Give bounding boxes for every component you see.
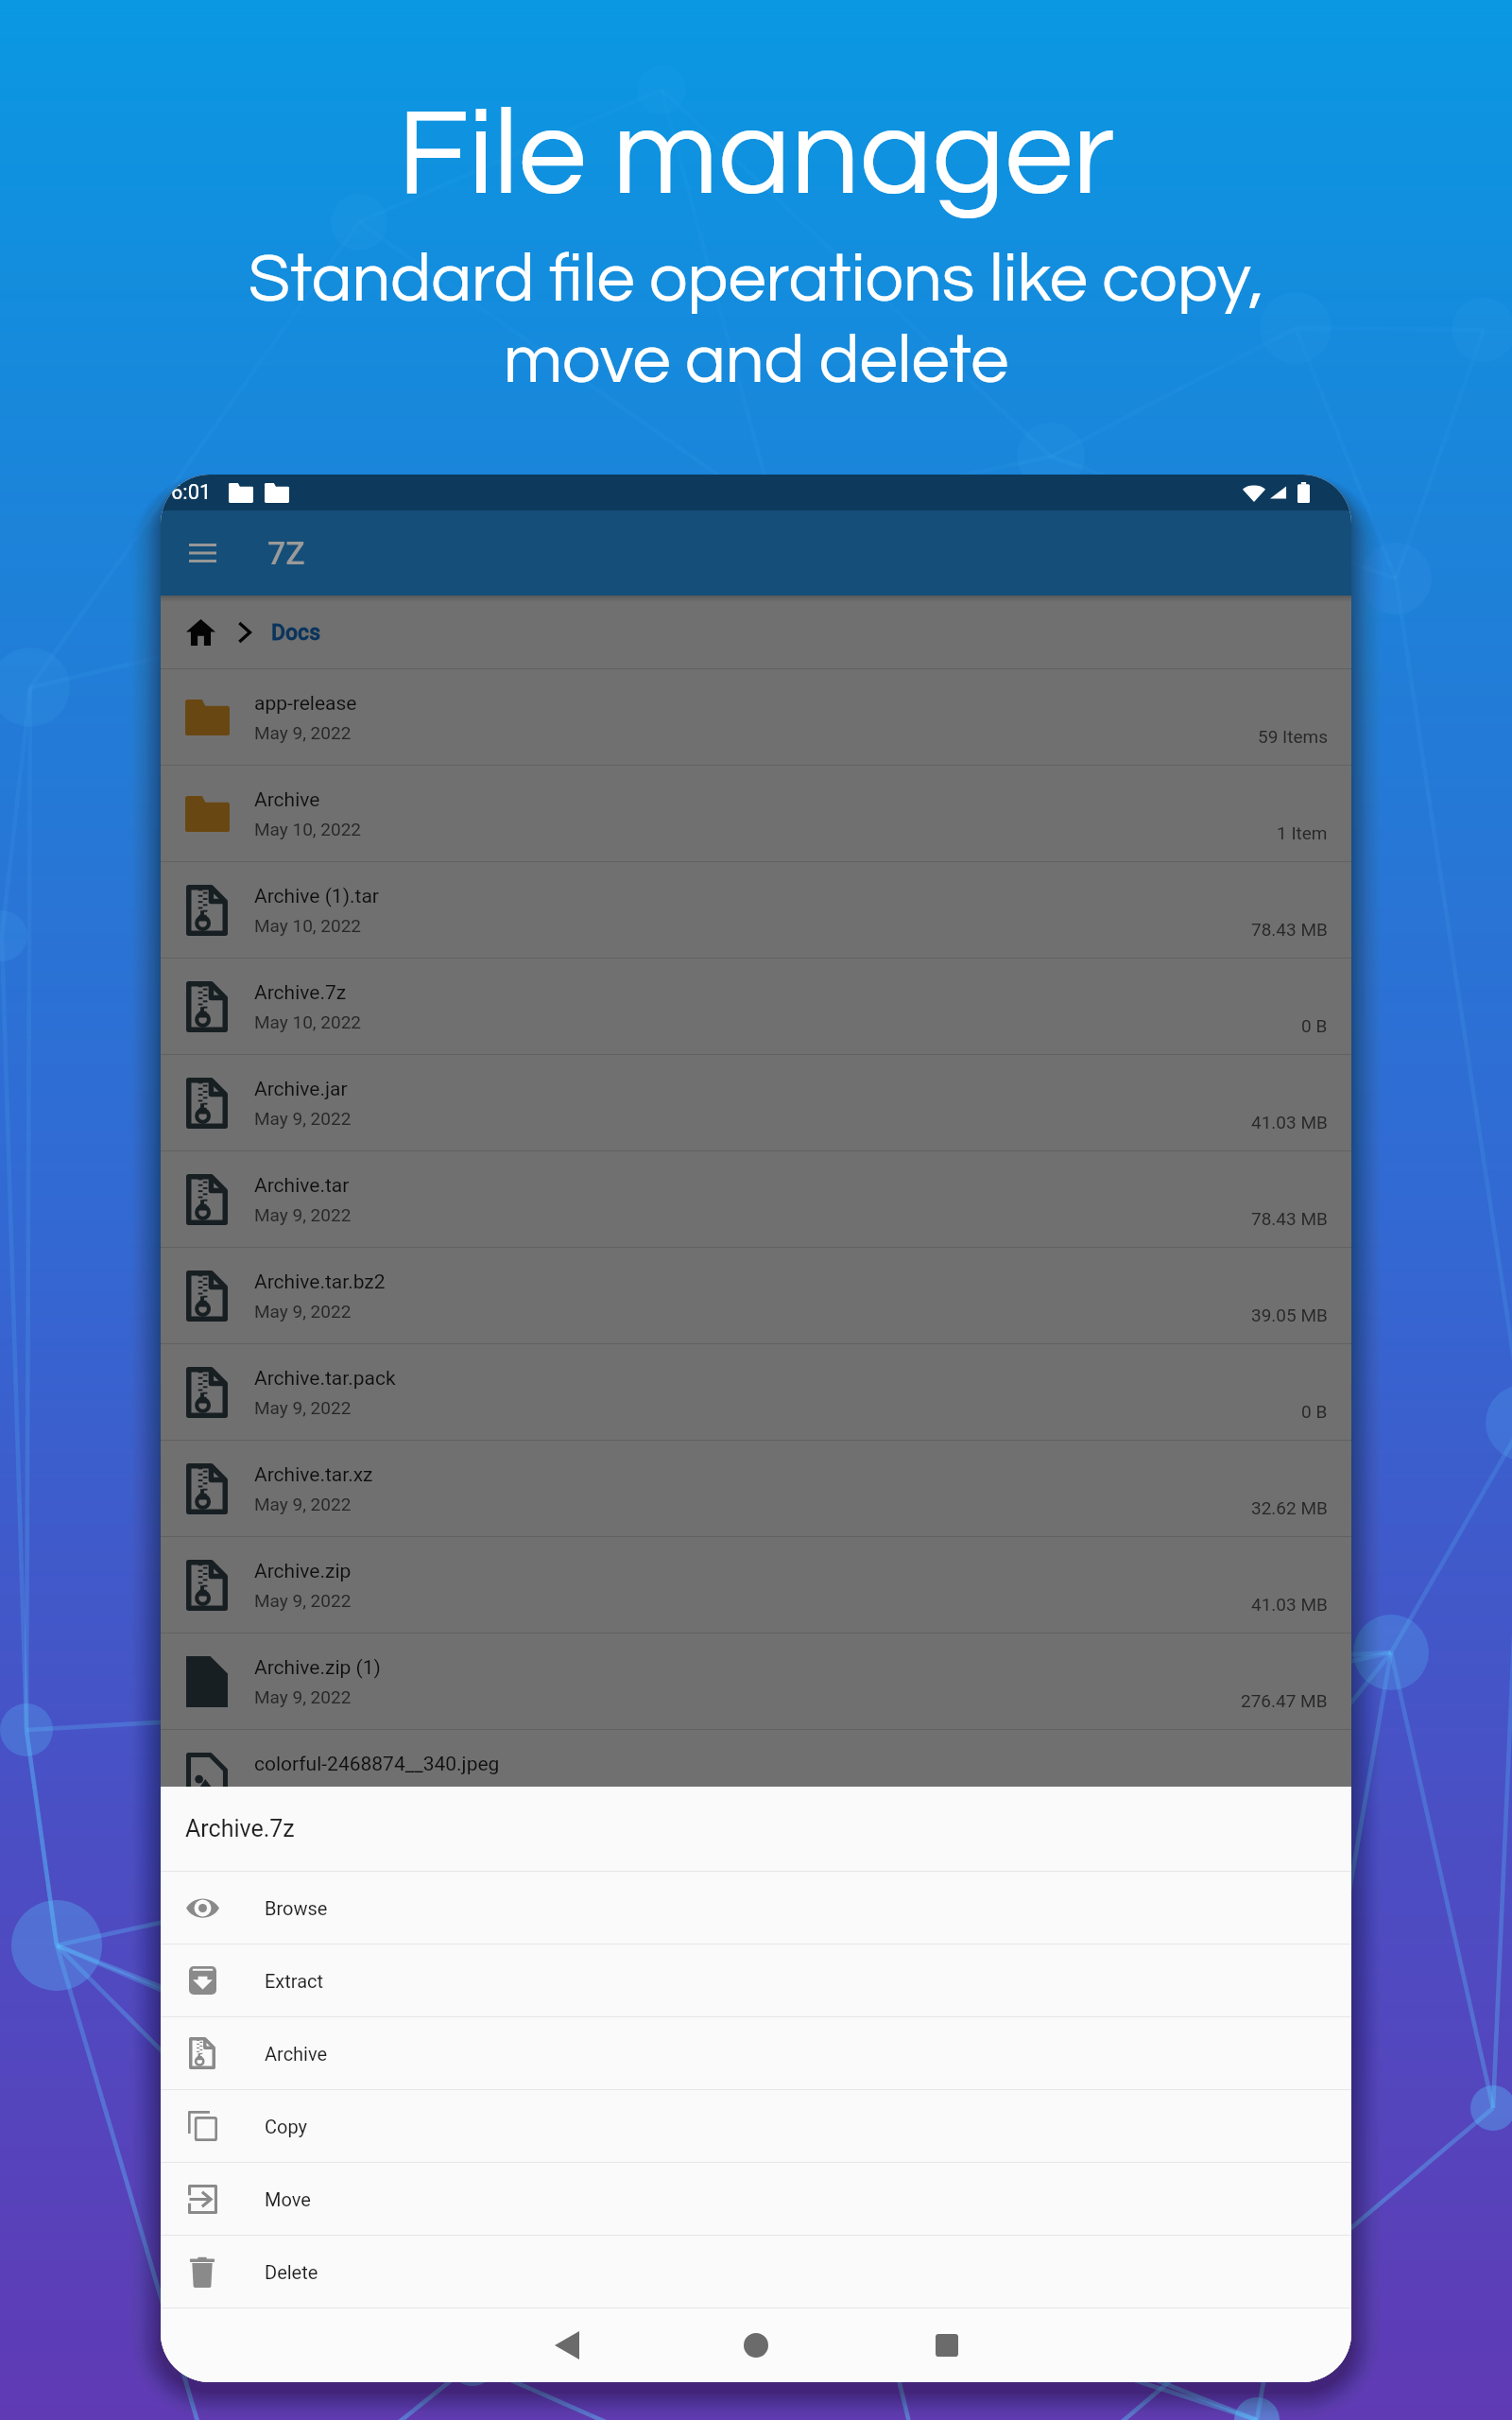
button[interactable]: colorful-2468874__340.jpeg bbox=[161, 1730, 1351, 1825]
staticText: app-release bbox=[254, 692, 357, 716]
button[interactable]: Extract bbox=[161, 1945, 1351, 2016]
staticText: Archive.tar bbox=[254, 1174, 350, 1198]
button[interactable]: Archive.7z bbox=[161, 1787, 1351, 1871]
staticText: 0 B bbox=[1301, 1401, 1328, 1422]
button[interactable]: Archive (1).tar bbox=[161, 862, 1351, 958]
staticText: Archive bbox=[254, 788, 320, 812]
staticText: colorful-2468874__340.jpeg bbox=[254, 1753, 500, 1776]
staticText: Browse bbox=[265, 1897, 328, 1919]
staticText: Extract bbox=[265, 1970, 324, 1992]
button[interactable]: Archive.7z bbox=[161, 959, 1351, 1054]
button[interactable]: Recents bbox=[916, 2314, 978, 2377]
staticText: 6:01 bbox=[171, 480, 212, 505]
button[interactable]: Archive.tar.pack bbox=[161, 1344, 1351, 1440]
staticText: Standard file operations like copy, move… bbox=[0, 245, 1512, 397]
staticText: Archive (1).tar bbox=[254, 885, 379, 908]
staticText: May 9, 2022 bbox=[254, 1686, 352, 1707]
staticText: May 9, 2022 bbox=[254, 1204, 352, 1225]
staticText: May 9, 2022 bbox=[254, 1494, 352, 1514]
staticText: Delete bbox=[265, 2261, 318, 2283]
staticText: Archive bbox=[265, 2043, 328, 2065]
button[interactable]: Archive.tar.bz2 bbox=[161, 1248, 1351, 1343]
staticText: Archive.7z bbox=[185, 1815, 295, 1842]
staticText: 78.43 MB bbox=[1251, 919, 1328, 940]
button[interactable]: Move bbox=[161, 2163, 1351, 2235]
staticText: May 10, 2022 bbox=[254, 1011, 362, 1032]
staticText: 39.05 MB bbox=[1251, 1305, 1328, 1325]
staticText: 1 Item bbox=[1277, 822, 1328, 843]
staticText: Archive.tar.xz bbox=[254, 1463, 373, 1487]
staticText: Archive.7z bbox=[254, 981, 347, 1005]
button[interactable]: Archive.tar bbox=[161, 1151, 1351, 1247]
button[interactable]: Archive bbox=[161, 2017, 1351, 2089]
button[interactable]: Open navigation menu bbox=[175, 526, 230, 580]
button[interactable]: app-release bbox=[161, 669, 1351, 765]
button[interactable]: Home folder bbox=[173, 599, 228, 665]
button[interactable]: Browse bbox=[161, 1872, 1351, 1944]
staticText: May 9, 2022 bbox=[254, 1301, 352, 1322]
staticText: Archive.tar.pack bbox=[254, 1367, 396, 1391]
staticText: 59 Items bbox=[1258, 726, 1328, 747]
staticText: 41.03 MB bbox=[1251, 1594, 1328, 1615]
staticText: 41.03 MB bbox=[1251, 1112, 1328, 1132]
button[interactable]: Archive.zip bbox=[161, 1537, 1351, 1633]
staticText: Archive.tar.bz2 bbox=[254, 1270, 386, 1294]
staticText: May 9, 2022 bbox=[254, 1397, 352, 1418]
staticText: Archive.zip (1) bbox=[254, 1656, 381, 1680]
staticText: May 9, 2022 bbox=[254, 1108, 352, 1129]
button[interactable]: Delete bbox=[161, 2236, 1351, 2308]
button[interactable]: Docs bbox=[259, 599, 334, 665]
button[interactable]: Archive.jar bbox=[161, 1055, 1351, 1150]
button[interactable]: Back bbox=[536, 2314, 598, 2377]
staticText: Archive.zip bbox=[254, 1560, 352, 1583]
button[interactable]: Copy bbox=[161, 2090, 1351, 2162]
staticText: 7Z bbox=[267, 534, 305, 572]
staticText: Docs bbox=[271, 620, 321, 646]
staticText: Copy bbox=[265, 2116, 308, 2137]
staticText: May 9, 2022 bbox=[254, 722, 352, 743]
staticText: May 10, 2022 bbox=[254, 915, 362, 936]
staticText: May 9, 2022 bbox=[254, 1590, 352, 1611]
button[interactable]: Archive.tar.xz bbox=[161, 1441, 1351, 1536]
staticText: 0 B bbox=[1301, 1015, 1328, 1036]
staticText: Move bbox=[265, 2188, 311, 2210]
button[interactable]: Home bbox=[725, 2314, 787, 2377]
staticText: 78.43 MB bbox=[1251, 1208, 1328, 1229]
staticText: May 10, 2022 bbox=[254, 819, 362, 839]
staticText: 32.62 MB bbox=[1251, 1497, 1328, 1518]
staticText: May 9, 2022 bbox=[254, 1783, 352, 1804]
button[interactable]: Archive bbox=[161, 766, 1351, 861]
button[interactable]: Archive.zip (1) bbox=[161, 1633, 1351, 1729]
staticText: File manager bbox=[0, 93, 1512, 218]
staticText: 276.47 MB bbox=[1241, 1690, 1328, 1711]
staticText: Archive.jar bbox=[254, 1078, 348, 1101]
